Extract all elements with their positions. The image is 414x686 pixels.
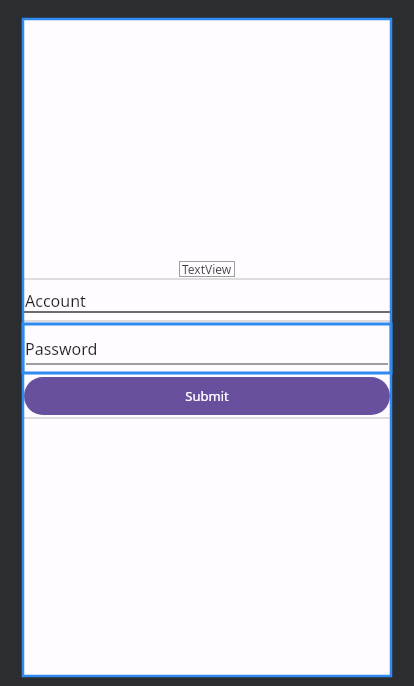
staticText: TextView — [182, 261, 232, 277]
staticText: Submit — [185, 387, 229, 405]
staticText: Account — [25, 290, 86, 312]
button[interactable]: Password — [22, 322, 392, 376]
staticText: Password — [25, 338, 98, 360]
button[interactable]: TextView — [22, 259, 392, 279]
button[interactable]: Account — [22, 280, 392, 321]
button[interactable]: Submit — [24, 377, 390, 415]
